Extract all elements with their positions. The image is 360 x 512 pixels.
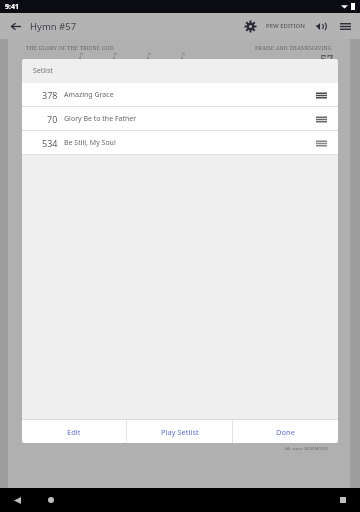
button[interactable]: Reorder Amazing Grace bbox=[314, 89, 328, 101]
button[interactable]: Menu bbox=[332, 13, 358, 39]
staticText: Glory Be to the Father bbox=[64, 114, 314, 124]
staticText: 534 bbox=[42, 137, 58, 149]
staticText: ♪ bbox=[78, 51, 84, 61]
staticText: ♪ bbox=[146, 51, 152, 61]
button[interactable]: Play Setlist bbox=[127, 420, 232, 443]
staticText: PEW EDITION bbox=[266, 22, 305, 30]
staticText: Be Still, My Soul bbox=[64, 138, 314, 148]
staticText: Hymn #57 bbox=[30, 20, 77, 33]
staticText: PRAISE AND THANKSGIVING bbox=[255, 44, 332, 51]
staticText: Play Setlist bbox=[161, 427, 199, 437]
button[interactable]: Reorder Be Still, My Soul bbox=[314, 137, 328, 149]
button[interactable]: Back bbox=[0, 13, 30, 39]
button[interactable]: 378 bbox=[22, 83, 338, 106]
staticText: Done bbox=[276, 427, 295, 437]
button[interactable]: 534 bbox=[22, 131, 338, 154]
button[interactable]: Edit bbox=[22, 420, 126, 443]
button[interactable]: PEW EDITION bbox=[263, 22, 308, 30]
button[interactable]: 70 bbox=[22, 107, 338, 130]
staticText: ♪ bbox=[112, 51, 118, 61]
button[interactable]: Sound bbox=[308, 14, 332, 38]
staticText: Edit bbox=[67, 427, 81, 437]
staticText: MUSIC: Carl G. Gläser; arr. by Lowell Ma… bbox=[60, 438, 171, 444]
staticText: Amazing Grace bbox=[64, 90, 314, 100]
button[interactable]: Recent apps bbox=[336, 493, 350, 507]
staticText: ♪ bbox=[180, 51, 186, 61]
button[interactable]: Back bbox=[10, 493, 24, 507]
button[interactable]: Reorder Glory Be to the Father bbox=[314, 113, 328, 125]
button[interactable]: Done bbox=[233, 420, 338, 443]
staticText: THE GLORY OF THE TRIUNE GOD bbox=[26, 44, 114, 51]
staticText: 9:41 bbox=[5, 2, 19, 12]
staticText: 57 bbox=[320, 51, 334, 67]
staticText: Alt. tune: RICHMOND bbox=[285, 446, 328, 452]
staticText: 70 bbox=[47, 113, 58, 125]
button[interactable]: Home bbox=[44, 493, 58, 507]
button[interactable]: Settings bbox=[237, 13, 263, 39]
staticText: 378 bbox=[42, 89, 58, 101]
staticText: Setlist bbox=[33, 66, 53, 76]
staticText: WORDS: Charles Wesley, 1739 bbox=[60, 431, 127, 437]
